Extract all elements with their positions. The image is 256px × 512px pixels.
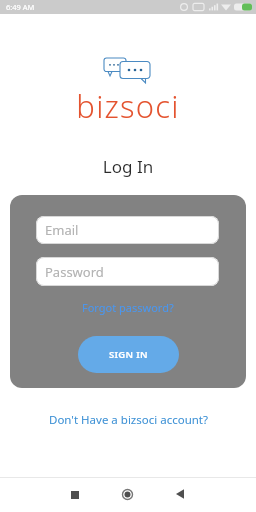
staticText: 6:49 AM: [6, 2, 35, 12]
staticText: Email: [45, 221, 79, 239]
staticText: Log In: [0, 155, 256, 178]
button[interactable]: Don't Have a bizsoci account?: [0, 412, 256, 428]
staticText: bizsoci: [0, 85, 256, 127]
staticText: SIGN IN: [109, 348, 148, 361]
staticText: Don't Have a bizsoci account?: [49, 412, 208, 428]
button[interactable]: SIGN IN: [78, 336, 179, 373]
button[interactable]: Password: [36, 257, 219, 286]
button[interactable]: Email: [36, 216, 219, 244]
staticText: Forgot password?: [82, 300, 174, 315]
staticText: Password: [45, 263, 104, 281]
button[interactable]: Forgot password?: [10, 300, 246, 315]
